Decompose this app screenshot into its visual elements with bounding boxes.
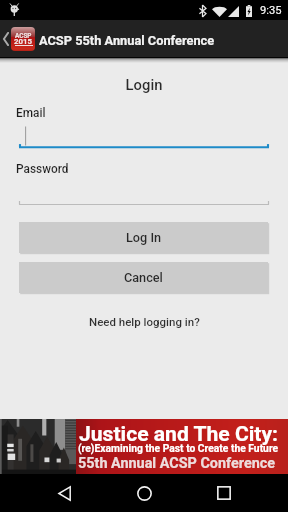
staticText: 9:35 [260,4,282,17]
staticText: Login [0,76,288,93]
button[interactable]: Recents [200,474,248,512]
button[interactable]: Navigate up [0,20,11,57]
staticText: ACSP [15,32,32,40]
button[interactable]: Cancel [19,262,269,294]
staticText: 2015 [14,37,32,46]
staticText: (re)Examining the Past to Create the Fut… [78,442,279,454]
staticText: Password [16,162,69,176]
staticText: ACSP 55th Annual Conference [39,33,215,48]
button[interactable]: Log In [19,222,269,254]
staticText: Email [16,106,46,120]
staticText: 55th Annual ACSP Conference [78,455,276,472]
staticText: Cancel [124,270,163,285]
button[interactable]: Home [120,474,168,512]
button[interactable]: Back [40,474,88,512]
button[interactable]: Justice and The City: [0,419,288,474]
staticText: Justice and The City: [79,421,279,446]
button[interactable]: Need help logging in? [89,315,200,328]
staticText: Log In [126,230,162,245]
